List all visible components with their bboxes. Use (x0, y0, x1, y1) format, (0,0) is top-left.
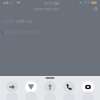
staticText: pann.nate.com (34, 6, 59, 11)
button[interactable]: Messages (21, 81, 40, 93)
staticText: 11:11 PM (43, 1, 59, 6)
button[interactable]: Call (59, 81, 78, 93)
staticText: 자유톡 (2, 19, 14, 24)
button[interactable]: AirDrop (2, 81, 21, 93)
staticText: 커뮤니티 (16, 19, 32, 24)
button[interactable]: Camera (78, 81, 97, 93)
staticText: LTE (9, 1, 12, 4)
button[interactable]: Share (40, 81, 59, 93)
staticText: 68% (83, 1, 89, 4)
